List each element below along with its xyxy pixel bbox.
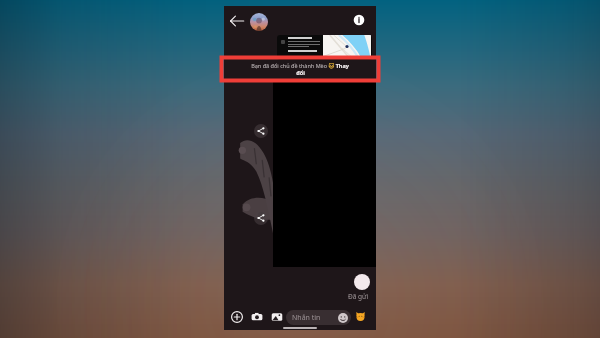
button[interactable]: Back bbox=[229, 13, 245, 29]
button[interactable]: Conversation info bbox=[352, 13, 366, 27]
staticText: Bạn đã đổi chủ đề thành Mèo 🐱 Thay bbox=[251, 62, 349, 69]
button[interactable]: Nhắn tin bbox=[286, 310, 351, 325]
button[interactable]: Gallery bbox=[270, 310, 283, 323]
staticText: đổi bbox=[296, 69, 305, 76]
button[interactable]: Profile bbox=[250, 13, 268, 31]
button[interactable]: Photo message bbox=[273, 80, 376, 267]
button[interactable]: Share bbox=[254, 211, 268, 225]
button[interactable]: More options bbox=[230, 310, 243, 323]
staticText: Nhắn tin bbox=[292, 313, 321, 323]
button[interactable]: Cat sticker bbox=[354, 310, 367, 323]
button[interactable]: Camera bbox=[250, 310, 263, 323]
button[interactable] bbox=[277, 35, 372, 60]
button[interactable]: Share bbox=[254, 124, 268, 138]
staticText: Đã gửi bbox=[348, 292, 369, 301]
